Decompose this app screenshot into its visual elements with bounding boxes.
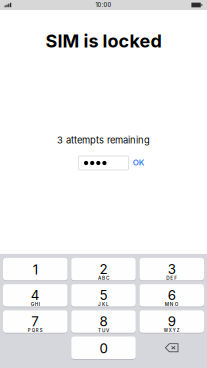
button[interactable]: 5 <box>71 284 136 307</box>
staticText: 2 <box>99 261 107 277</box>
button[interactable]: Delete <box>139 336 204 359</box>
button[interactable]: 7 <box>3 310 67 333</box>
button[interactable]: 6 <box>139 284 204 307</box>
button[interactable]: 1 <box>3 258 67 280</box>
staticText: P Q R S <box>28 328 43 333</box>
staticText: 7 <box>31 313 39 329</box>
button[interactable]: OK <box>131 155 147 169</box>
staticText: 4 <box>31 287 40 303</box>
staticText: 9 <box>168 313 176 329</box>
staticText: M N O <box>165 301 179 307</box>
staticText: 0 <box>99 340 107 356</box>
button[interactable]: 3 <box>139 258 204 280</box>
staticText: 3 <box>168 261 176 277</box>
staticText: G H I <box>31 301 40 307</box>
staticText: 3 attempts remaining <box>57 134 150 146</box>
staticText: SIM is locked <box>45 30 161 52</box>
staticText: OK <box>133 158 145 167</box>
button[interactable]: 8 <box>71 310 136 333</box>
staticText: 10:00 <box>95 2 111 8</box>
staticText: D E F <box>166 275 177 281</box>
staticText: 1 <box>33 262 38 278</box>
staticText: 8 <box>99 313 107 329</box>
button[interactable]: 0 <box>71 336 136 359</box>
button[interactable]: 2 <box>71 258 136 280</box>
staticText: 5 <box>99 287 107 303</box>
staticText: J K L <box>98 301 109 307</box>
staticText: A B C <box>98 275 109 281</box>
staticText: T U V <box>98 328 109 333</box>
button[interactable]: 4 <box>3 284 67 307</box>
button[interactable]: 9 <box>139 310 204 333</box>
staticText: W X Y Z <box>164 328 180 333</box>
staticText: 6 <box>168 287 176 303</box>
